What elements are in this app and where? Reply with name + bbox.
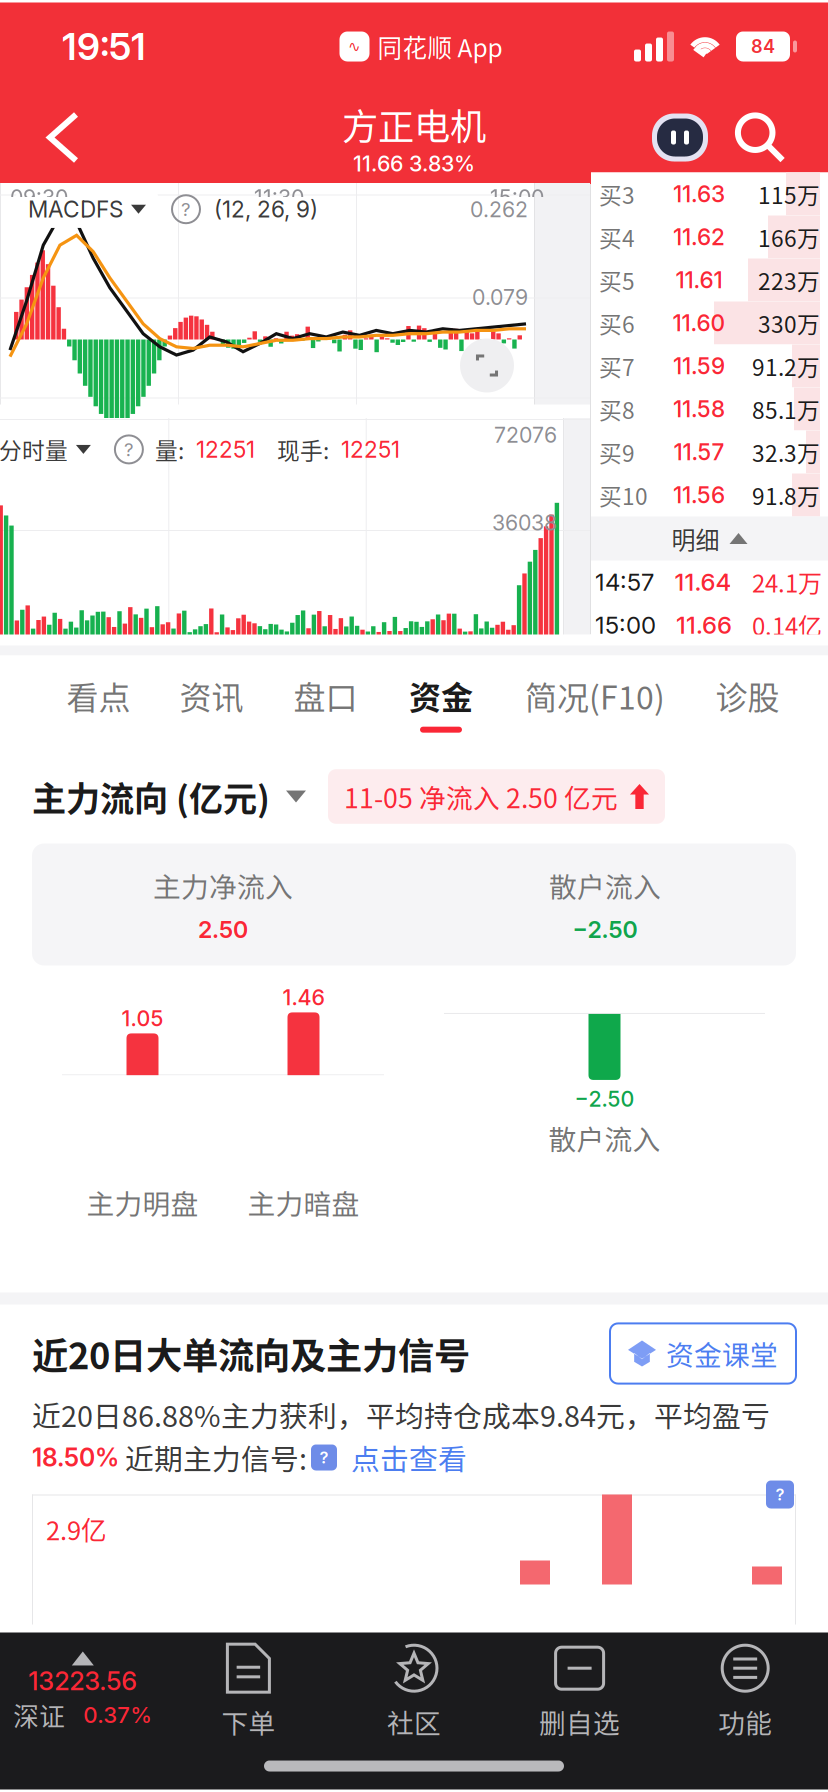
button[interactable]: 资讯: [155, 655, 268, 749]
staticText: 13223.56: [28, 1665, 137, 1696]
staticText: 91.2万: [752, 350, 820, 382]
staticText: 11.60: [672, 309, 725, 337]
button[interactable]: 买4: [591, 215, 828, 258]
button[interactable]: Back: [24, 92, 102, 182]
staticText: 买8: [599, 393, 635, 425]
staticText: 11.61: [675, 266, 722, 294]
staticText: 主力净流入: [153, 865, 293, 906]
staticText: MACDFS: [28, 195, 123, 223]
button[interactable]: 看点: [42, 655, 155, 749]
staticText: 1.46: [282, 984, 324, 1010]
button[interactable]: 明细: [591, 516, 828, 560]
staticText: ?: [775, 1484, 784, 1504]
staticText: 15:00: [490, 184, 544, 210]
staticText: 买3: [599, 178, 635, 210]
staticText: 11.66 3.83%: [353, 151, 475, 177]
button[interactable]: 买3: [591, 172, 828, 215]
staticText: 散户流入: [549, 865, 661, 906]
staticText: 2.50: [198, 915, 248, 944]
staticText: 09:30: [10, 184, 68, 210]
staticText: ∿: [348, 38, 361, 55]
staticText: 18.50%: [32, 1442, 119, 1472]
button[interactable]: 买6: [591, 301, 828, 344]
button[interactable]: 下单: [166, 1644, 331, 1741]
button[interactable]: 简况(F10): [499, 655, 691, 749]
button[interactable]: 买5: [591, 258, 828, 301]
staticText: 方正电机: [342, 98, 486, 151]
staticText: 主力流向 (亿元): [32, 772, 270, 821]
staticText: 11.57: [673, 438, 724, 466]
staticText: 12251: [341, 436, 400, 463]
staticText: ?: [319, 1447, 328, 1467]
staticText: 买5: [599, 264, 635, 296]
staticText: 买9: [599, 436, 635, 468]
staticText: 0.262: [470, 196, 528, 222]
staticText: 0.079: [472, 284, 528, 310]
staticText: 点击查看: [351, 1437, 467, 1478]
staticText: 买4: [599, 221, 635, 253]
button[interactable]: 功能: [662, 1644, 828, 1741]
staticText: ?: [124, 438, 134, 461]
button[interactable]: 买8: [591, 387, 828, 430]
staticText: 分时量: [0, 433, 68, 466]
staticText: 2.9亿: [46, 1510, 107, 1548]
staticText: 主力暗盘: [247, 1182, 359, 1223]
staticText: 明细: [671, 521, 719, 556]
button[interactable]: AI assistant: [642, 99, 718, 175]
staticText: 买7: [599, 350, 635, 382]
staticText: 11.62: [673, 223, 725, 251]
button[interactable]: 社区: [331, 1644, 497, 1741]
button[interactable]: 买10: [591, 473, 828, 516]
staticText: 资金: [409, 672, 473, 719]
staticText: 量:: [155, 433, 184, 466]
staticText: (12, 26, 9): [214, 195, 318, 223]
staticText: 诊股: [715, 672, 779, 719]
staticText: 166万: [758, 221, 820, 253]
staticText: 功能: [718, 1702, 772, 1741]
staticText: 下单: [221, 1702, 275, 1741]
staticText: 14:57: [595, 567, 654, 596]
staticText: 资讯: [179, 672, 243, 719]
staticText: 32.3万: [752, 436, 820, 468]
button[interactable]: 删自选: [497, 1644, 662, 1741]
staticText: 91.8万: [752, 479, 820, 511]
staticText: 简况(F10): [525, 672, 665, 719]
staticText: 深证: [13, 1696, 65, 1734]
staticText: 看点: [66, 672, 130, 719]
staticText: −2.50: [574, 1086, 634, 1112]
staticText: 11-05 净流入 2.50 亿元: [344, 777, 618, 816]
button[interactable]: 诊股: [691, 655, 804, 749]
button[interactable]: 资金: [383, 655, 499, 749]
button[interactable]: 点击查看: [337, 1437, 467, 1478]
staticText: 72076: [494, 422, 557, 448]
staticText: 24.1万: [752, 565, 822, 599]
button[interactable]: 11-05 净流入 2.50 亿元: [328, 769, 665, 824]
staticText: 买10: [599, 479, 648, 511]
staticText: 223万: [758, 264, 820, 296]
button[interactable]: 买9: [591, 430, 828, 473]
button[interactable]: 买7: [591, 344, 828, 387]
staticText: 主力明盘: [86, 1182, 198, 1223]
staticText: 12251: [196, 436, 255, 463]
staticText: 现手:: [277, 433, 329, 466]
staticText: 115万: [758, 178, 820, 210]
staticText: 84: [751, 35, 775, 57]
staticText: 近期主力信号:: [119, 1437, 307, 1478]
staticText: 11.64: [674, 567, 731, 596]
button[interactable]: Search: [718, 99, 802, 175]
staticText: 盘口: [293, 672, 357, 719]
button[interactable]: 资金课堂: [610, 1323, 796, 1384]
staticText: 11.66: [676, 610, 732, 639]
staticText: 15:00: [595, 610, 656, 639]
staticText: 85.1万: [752, 393, 820, 425]
staticText: 近20日86.88%主力获利，平均持仓成本9.84元，平均盈亏: [32, 1394, 770, 1435]
staticText: 0.37%: [83, 1701, 152, 1728]
button[interactable]: 盘口: [268, 655, 383, 749]
staticText: −2.50: [572, 915, 637, 944]
staticText: 36038: [492, 510, 557, 536]
staticText: ?: [181, 198, 191, 220]
staticText: 11.56: [673, 481, 725, 509]
staticText: 19:51: [62, 24, 146, 69]
staticText: 同花顺 App: [377, 29, 502, 64]
